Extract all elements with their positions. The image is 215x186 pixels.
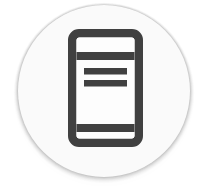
button[interactable]: Article reader app — [0, 0, 215, 186]
